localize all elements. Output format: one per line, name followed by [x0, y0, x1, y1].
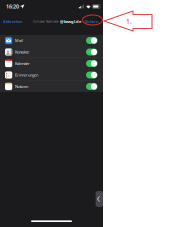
staticText: @kwvgl.de: [60, 19, 81, 24]
button[interactable]: Kalender: [0, 58, 103, 69]
staticText: 1.: [126, 17, 132, 26]
staticText: Notizen: [15, 84, 28, 89]
staticText: Sichern: [85, 19, 98, 24]
button[interactable]: Ein/Aus: [86, 37, 97, 44]
button[interactable]: Notizen: [0, 81, 103, 92]
button[interactable]: Sichern: [85, 15, 103, 27]
staticText: Mail: [15, 38, 23, 43]
staticText: Kontakte: [15, 49, 29, 55]
button[interactable]: Mail: [0, 35, 103, 46]
button[interactable]: Ein/Aus: [86, 48, 97, 55]
staticText: Erinnerungen: [15, 72, 38, 78]
button[interactable]: Abbrechen: [3, 15, 27, 27]
staticText: Abbrechen: [3, 19, 22, 24]
staticText: Vorname Nachname: [33, 20, 59, 23]
button[interactable]: Ein/Aus: [86, 60, 97, 67]
button[interactable]: Ein/Aus: [86, 71, 97, 78]
staticText: Kalender: [15, 61, 30, 66]
button[interactable]: Erinnerungen: [0, 69, 103, 80]
button[interactable]: Zurück: [96, 191, 103, 207]
staticText: 16:20: [6, 3, 19, 10]
button[interactable]: Ein/Aus: [86, 83, 97, 90]
button[interactable]: Kontakte: [0, 46, 103, 57]
